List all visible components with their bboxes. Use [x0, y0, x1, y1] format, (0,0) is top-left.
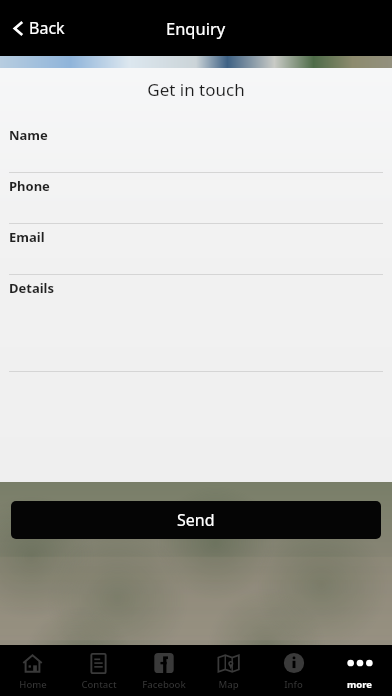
button[interactable]: Back [10, 11, 69, 45]
other: Contact [88, 653, 109, 674]
other: Home [21, 652, 44, 675]
staticText: Facebook [142, 678, 186, 691]
button[interactable]: Facebook [131, 645, 196, 696]
staticText: Info [284, 678, 303, 691]
button[interactable]: Contact [66, 645, 131, 696]
staticText: Home [19, 678, 47, 691]
button[interactable]: Send [11, 501, 381, 539]
staticText: Details [9, 279, 54, 297]
staticText: Map [218, 678, 239, 691]
button[interactable]: Info [261, 645, 326, 696]
staticText: Back [29, 17, 65, 39]
staticText: Send [177, 509, 215, 531]
staticText: Phone [9, 177, 50, 195]
staticText: Contact [81, 678, 117, 691]
other: Map [217, 652, 240, 675]
staticText: Enquiry [166, 17, 226, 39]
other: More [347, 659, 373, 667]
button[interactable]: Home [0, 645, 65, 696]
staticText: Get in touch [0, 78, 392, 101]
button[interactable]: Map [196, 645, 261, 696]
staticText: Email [9, 228, 45, 246]
staticText: more [347, 678, 372, 691]
other: Facebook [153, 652, 175, 674]
button[interactable]: More [327, 645, 392, 696]
staticText: Name [9, 126, 48, 144]
other: Info [283, 652, 305, 674]
